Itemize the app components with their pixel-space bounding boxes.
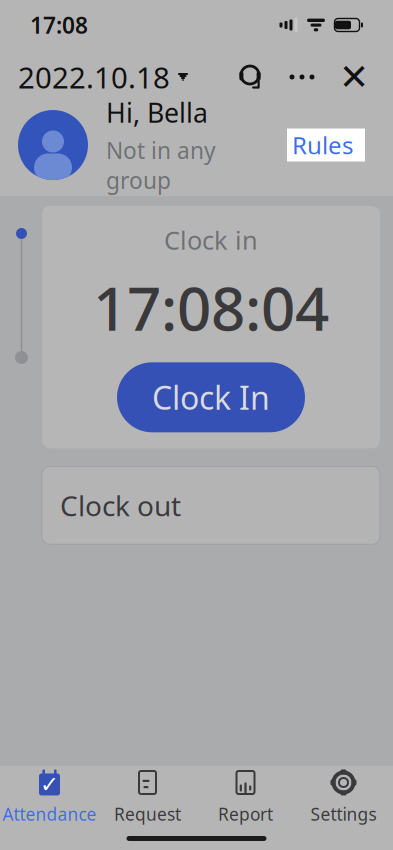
staticText: ✓ xyxy=(40,772,59,797)
staticText: Attendance xyxy=(2,802,96,825)
button[interactable]: ✓ xyxy=(0,766,98,828)
staticText: Not in any group xyxy=(106,135,216,195)
staticText: Request xyxy=(114,802,181,825)
staticText: Report xyxy=(218,802,273,825)
button[interactable]: Settings xyxy=(294,766,392,828)
staticText: 2022.10.18 xyxy=(18,57,170,96)
staticText: Hi, Bella xyxy=(106,95,208,130)
button[interactable]: 2022.10.18 xyxy=(18,51,188,102)
button[interactable]: Report xyxy=(196,766,294,828)
button[interactable]: Customer support xyxy=(229,56,271,98)
staticText: 17:08 xyxy=(30,10,88,40)
button[interactable]: Clock In xyxy=(117,362,305,432)
staticText: Rules xyxy=(292,129,353,161)
button[interactable]: Rules xyxy=(287,128,365,161)
button[interactable]: Close xyxy=(333,56,375,98)
button[interactable]: Clock out xyxy=(42,466,380,544)
button[interactable]: More options xyxy=(281,56,323,98)
staticText: 17:08:04 xyxy=(93,268,329,347)
staticText: Clock in xyxy=(164,223,258,257)
button[interactable]: Request xyxy=(98,766,196,828)
staticText: Clock In xyxy=(152,376,270,419)
staticText: Clock out xyxy=(60,487,181,524)
staticText: ✕ xyxy=(339,57,369,97)
staticText: Settings xyxy=(310,802,376,825)
